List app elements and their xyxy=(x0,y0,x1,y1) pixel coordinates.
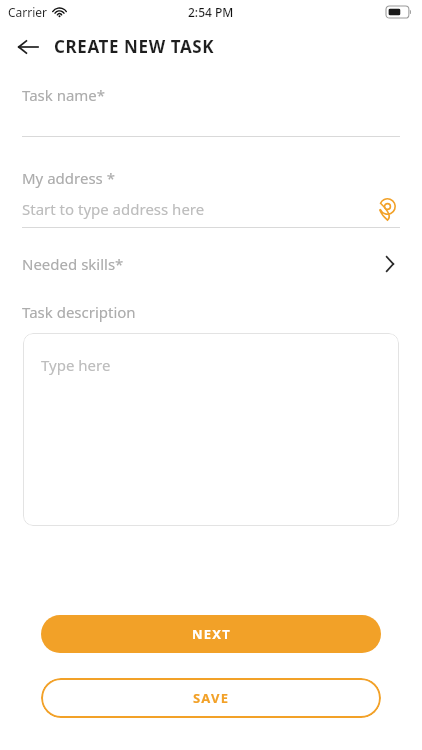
staticText: 2:54 PM xyxy=(188,4,234,20)
button[interactable]: Back xyxy=(10,29,46,65)
staticText: SAVE xyxy=(193,689,230,707)
staticText: CREATE NEW TASK xyxy=(54,35,215,58)
staticText: My address * xyxy=(22,168,115,188)
button[interactable]: SAVE xyxy=(41,678,381,718)
staticText: Needed skills* xyxy=(22,254,380,274)
button[interactable]: Type here xyxy=(23,333,399,526)
staticText: Task description xyxy=(22,302,136,322)
staticText: Start to type address here xyxy=(22,199,374,219)
button[interactable]: Needed skills* xyxy=(0,250,422,278)
staticText: NEXT xyxy=(192,625,231,643)
button[interactable]: Pick location on map xyxy=(374,196,400,222)
staticText: Task name* xyxy=(22,85,106,105)
staticText: Carrier xyxy=(8,4,48,20)
button[interactable]: Start to type address here xyxy=(22,196,400,222)
staticText: Type here xyxy=(41,355,111,375)
button[interactable]: NEXT xyxy=(41,615,381,653)
